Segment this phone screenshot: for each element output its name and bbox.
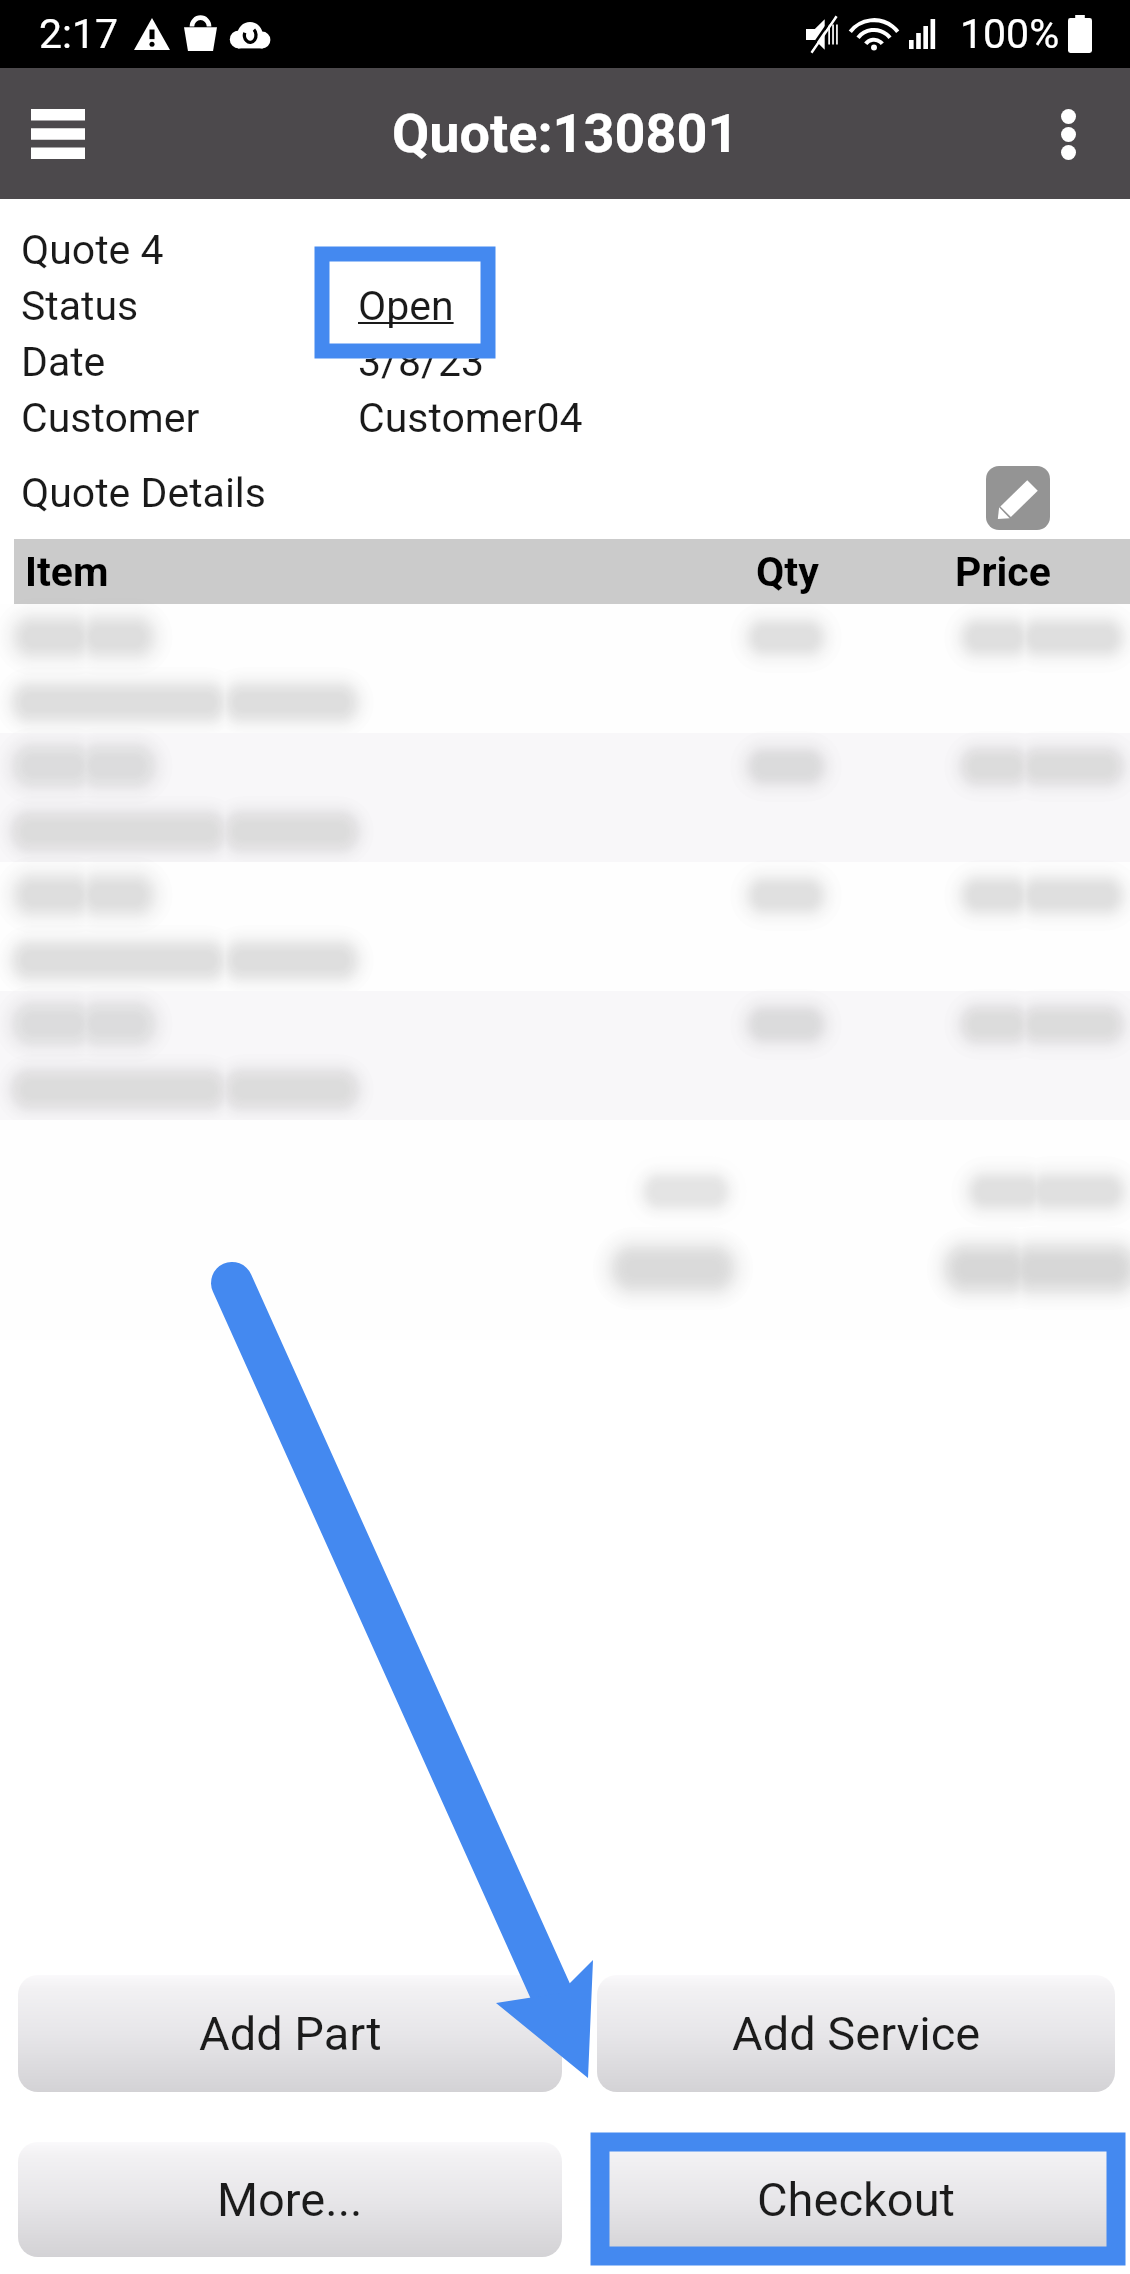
button[interactable]: Quote line item bbox=[0, 604, 1130, 733]
staticText: Status bbox=[21, 282, 139, 330]
button[interactable]: More options bbox=[1028, 76, 1108, 192]
staticText: Quote Details bbox=[21, 469, 266, 517]
staticText: Add Service bbox=[732, 2006, 981, 2061]
staticText: 100% bbox=[960, 10, 1060, 58]
staticText: Qty bbox=[756, 548, 819, 596]
staticText: Customer04 bbox=[358, 394, 583, 442]
staticText: Date bbox=[21, 338, 106, 386]
staticText: Item bbox=[25, 548, 109, 596]
button[interactable]: Edit quote details bbox=[986, 466, 1050, 530]
staticText: Customer bbox=[21, 394, 200, 442]
button[interactable]: More... bbox=[18, 2142, 562, 2257]
button[interactable]: Checkout bbox=[597, 2142, 1115, 2257]
staticText: Price bbox=[955, 548, 1051, 596]
staticText: Checkout bbox=[757, 2172, 955, 2227]
staticText: Quote 4 bbox=[21, 226, 164, 274]
button[interactable]: Open navigation menu bbox=[4, 76, 112, 192]
staticText: More... bbox=[217, 2172, 363, 2227]
button[interactable]: Quote line item bbox=[0, 733, 1130, 862]
button[interactable]: Quote line item bbox=[0, 991, 1130, 1120]
button[interactable]: Quote line item bbox=[0, 862, 1130, 991]
button[interactable]: Add Service bbox=[597, 1975, 1115, 2092]
staticText: Quote:130801 bbox=[392, 102, 739, 165]
staticText: 2:17 bbox=[39, 10, 119, 58]
button[interactable]: Open bbox=[358, 282, 454, 330]
staticText: Add Part bbox=[199, 2006, 382, 2061]
staticText: 3/8/23 bbox=[358, 338, 485, 386]
button[interactable]: Add Part bbox=[18, 1975, 562, 2092]
